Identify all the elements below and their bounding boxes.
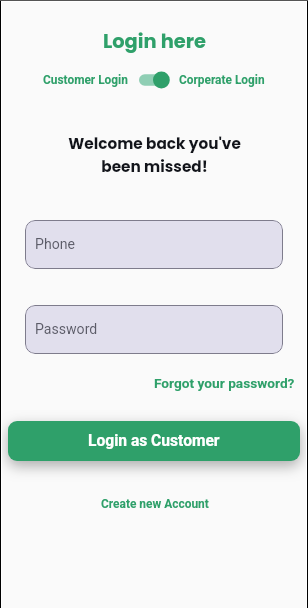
- button[interactable]: Login as Customer: [8, 421, 300, 461]
- staticText: Create new Account: [101, 497, 209, 511]
- button[interactable]: Create new Account: [101, 497, 209, 511]
- button[interactable]: Password: [25, 305, 283, 354]
- staticText: Login as Customer: [88, 432, 220, 450]
- button[interactable]: Forgot your password?: [154, 375, 295, 391]
- staticText: Welcome back you've been missed!: [68, 133, 241, 178]
- staticText: Forgot your password?: [154, 375, 295, 391]
- staticText: Login here: [103, 28, 206, 55]
- button[interactable]: Corperate Login: [179, 73, 265, 87]
- staticText: Corperate Login: [179, 73, 265, 87]
- staticText: Password: [35, 321, 98, 338]
- button[interactable]: Customer Login: [43, 73, 128, 87]
- staticText: Customer Login: [43, 73, 128, 87]
- staticText: Phone: [35, 236, 75, 253]
- button[interactable]: Phone: [25, 220, 283, 269]
- button[interactable]: Toggle login type: [139, 71, 169, 89]
